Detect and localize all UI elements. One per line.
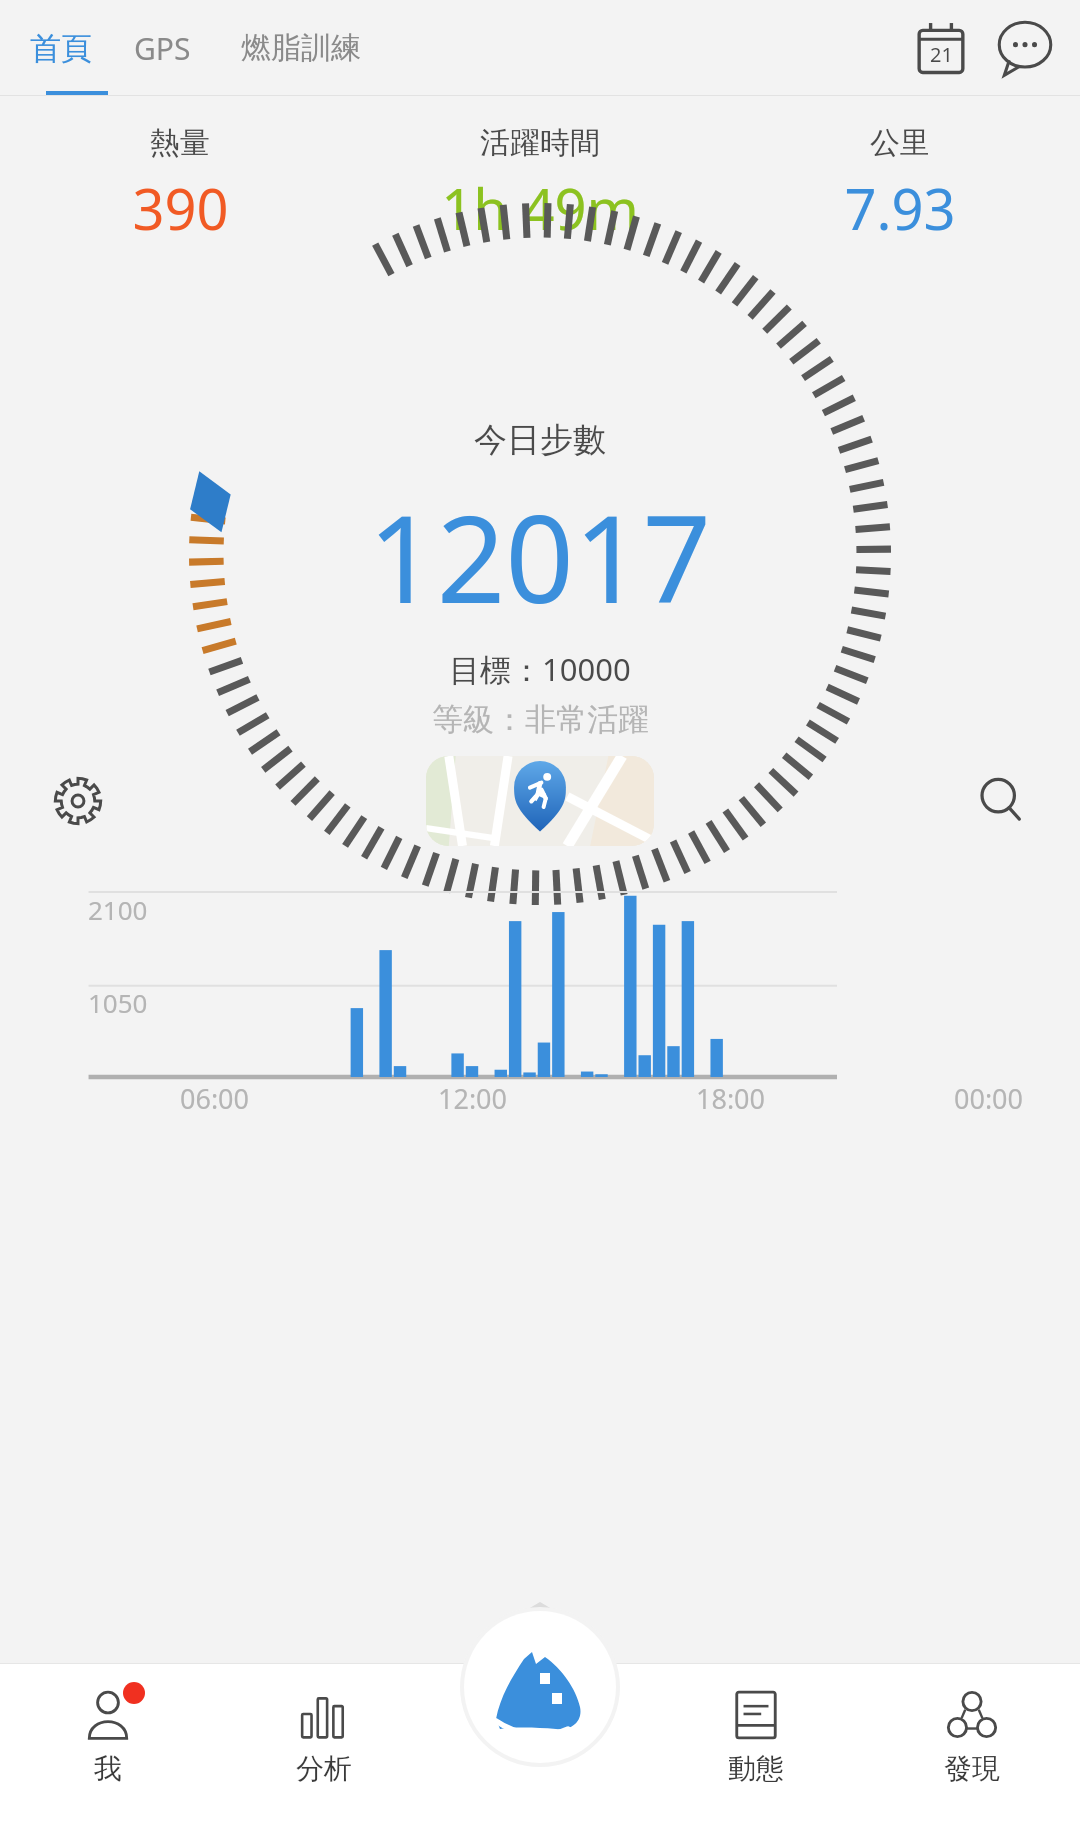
button[interactable]: Calendar [904, 11, 978, 85]
button[interactable]: 熱量 [0, 124, 360, 246]
staticText: 2100 [88, 892, 148, 927]
staticText: 390 [132, 170, 229, 246]
button[interactable]: 發現 [864, 1663, 1080, 1841]
button[interactable]: Settings [40, 763, 116, 839]
button[interactable]: 公里 [720, 124, 1080, 246]
button[interactable]: 活躍時間 [360, 124, 720, 246]
staticText: 12017 [368, 475, 712, 638]
staticText: 活躍時間 [480, 124, 600, 162]
staticText: 我 [94, 1751, 122, 1786]
staticText: 等級：非常活躍 [432, 700, 649, 739]
staticText: 動態 [728, 1751, 784, 1786]
staticText: 熱量 [150, 124, 210, 162]
button[interactable]: Start workout [460, 1607, 620, 1767]
button[interactable]: 我 [0, 1663, 216, 1841]
staticText: 1050 [88, 985, 148, 1020]
staticText: 21 [930, 41, 953, 68]
button[interactable]: Search [964, 763, 1040, 839]
staticText: 00:00 [954, 1080, 1024, 1117]
staticText: 公里 [870, 124, 930, 162]
staticText: 目標：10000 [449, 648, 631, 690]
staticText: GPS [134, 28, 191, 69]
staticText: 7.93 [844, 170, 956, 246]
staticText: 今日步數 [474, 419, 606, 461]
staticText: 18:00 [696, 1080, 766, 1117]
button[interactable]: GPS [120, 20, 205, 77]
button[interactable]: 分析 [216, 1663, 432, 1841]
staticText: 06:00 [180, 1080, 250, 1117]
button[interactable]: 首頁 [16, 21, 106, 76]
staticText: 燃脂訓練 [241, 29, 361, 67]
button[interactable]: 燃脂訓練 [227, 21, 375, 75]
button[interactable]: Map [426, 756, 654, 846]
staticText: 1h 49m [441, 170, 639, 246]
button[interactable]: Messages [988, 11, 1062, 85]
staticText: 首頁 [30, 29, 92, 68]
staticText: 發現 [944, 1751, 1000, 1786]
staticText: 分析 [296, 1751, 352, 1786]
button[interactable]: 動態 [648, 1663, 864, 1841]
staticText: 12:00 [438, 1080, 508, 1117]
